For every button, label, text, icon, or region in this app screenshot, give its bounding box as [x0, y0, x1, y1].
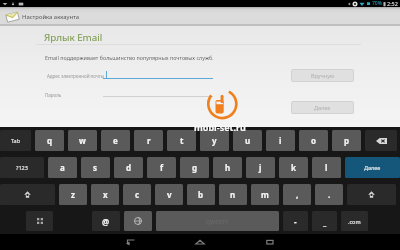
other: Backspace: [376, 137, 387, 145]
button[interactable]: Tab: [0, 130, 31, 151]
staticText: z: [71, 189, 75, 200]
button[interactable]: k: [279, 157, 308, 178]
staticText: .com: [348, 218, 361, 225]
button[interactable]: v: [155, 184, 183, 205]
staticText: l: [325, 162, 328, 173]
staticText: j: [259, 162, 262, 173]
button[interactable]: s: [81, 157, 110, 178]
button[interactable]: Back: [95, 234, 165, 250]
staticText: b: [198, 189, 204, 200]
staticText: v: [167, 189, 172, 200]
staticText: d: [126, 162, 132, 173]
staticText: 70%: [372, 0, 382, 7]
staticText: Пароль: [45, 92, 62, 98]
button[interactable]: t: [167, 130, 196, 151]
button[interactable]: y: [200, 130, 229, 151]
button[interactable]: ,: [283, 184, 311, 205]
button[interactable]: Home: [165, 234, 235, 250]
staticText: a: [60, 162, 65, 173]
staticText: c: [135, 189, 140, 200]
button[interactable]: p: [332, 130, 361, 151]
button[interactable]: w: [68, 130, 97, 151]
button[interactable]: z: [59, 184, 87, 205]
staticText: Далее: [364, 164, 381, 171]
button[interactable]: Settings: [26, 211, 53, 231]
staticText: t: [180, 135, 184, 146]
staticText: Email поддерживает большинство популярны…: [45, 54, 214, 61]
staticText: e: [113, 135, 118, 146]
staticText: f: [160, 162, 164, 173]
staticText: .: [328, 189, 331, 200]
staticText: u: [245, 135, 251, 146]
button[interactable]: Shift: [0, 184, 55, 205]
staticText: y: [212, 135, 217, 146]
button[interactable]: f: [147, 157, 176, 178]
button[interactable]: .: [315, 184, 343, 205]
staticText: i: [279, 135, 282, 146]
button[interactable]: q: [35, 130, 64, 151]
button[interactable]: Вручную: [291, 69, 354, 82]
button[interactable]: -: [283, 211, 308, 231]
button[interactable]: u: [233, 130, 262, 151]
staticText: _: [323, 216, 327, 227]
button[interactable]: Далее: [291, 101, 354, 114]
button[interactable]: r: [134, 130, 163, 151]
staticText: q: [47, 135, 53, 146]
staticText: m: [261, 189, 269, 200]
button[interactable]: o: [299, 130, 328, 151]
button[interactable]: x: [91, 184, 119, 205]
staticText: mobi-set.ru: [194, 121, 246, 133]
other: Shift: [368, 191, 375, 198]
button[interactable]: d: [114, 157, 143, 178]
staticText: Далее: [314, 104, 331, 111]
staticText: Адрес электронной почты: [47, 73, 105, 79]
button[interactable]: Shift: [347, 184, 396, 205]
staticText: ,: [296, 189, 299, 200]
button[interactable]: j: [246, 157, 275, 178]
button[interactable]: g: [180, 157, 209, 178]
staticText: p: [344, 135, 350, 146]
button[interactable]: b: [187, 184, 215, 205]
button[interactable]: _: [312, 211, 337, 231]
button[interactable]: @: [92, 211, 120, 231]
staticText: x: [103, 189, 108, 200]
button[interactable]: h: [213, 157, 242, 178]
staticText: 2:52: [387, 0, 398, 7]
staticText: h: [225, 162, 231, 173]
other: Change language: [134, 217, 142, 225]
staticText: g: [192, 162, 198, 173]
staticText: w: [79, 135, 86, 146]
button[interactable]: a: [48, 157, 77, 178]
staticText: Настройка аккаунта: [22, 13, 80, 21]
staticText: r: [147, 135, 151, 146]
staticText: o: [311, 135, 316, 146]
button[interactable]: .com: [341, 211, 368, 231]
button[interactable]: Настройка аккаунта: [0, 7, 400, 26]
button[interactable]: m: [251, 184, 279, 205]
staticText: ?123: [16, 164, 28, 171]
button[interactable]: e: [101, 130, 130, 151]
staticText: Вручную: [311, 72, 335, 79]
staticText: QWERTY: [206, 218, 229, 225]
staticText: Ярлык Email: [44, 31, 103, 44]
staticText: k: [291, 162, 296, 173]
button[interactable]: l: [312, 157, 341, 178]
button[interactable]: Backspace: [365, 130, 397, 151]
other: Settings: [37, 218, 43, 224]
button[interactable]: Recents: [235, 234, 305, 250]
staticText: -: [294, 216, 297, 227]
staticText: s: [93, 162, 98, 173]
staticText: n: [230, 189, 236, 200]
button[interactable]: Change language: [124, 211, 152, 231]
staticText: @: [102, 216, 110, 227]
button[interactable]: n: [219, 184, 247, 205]
other: Shift: [24, 191, 31, 198]
button[interactable]: Далее: [345, 157, 400, 178]
button[interactable]: i: [266, 130, 295, 151]
staticText: Tab: [11, 137, 21, 144]
button[interactable]: c: [123, 184, 151, 205]
button[interactable]: ?123: [0, 157, 44, 178]
